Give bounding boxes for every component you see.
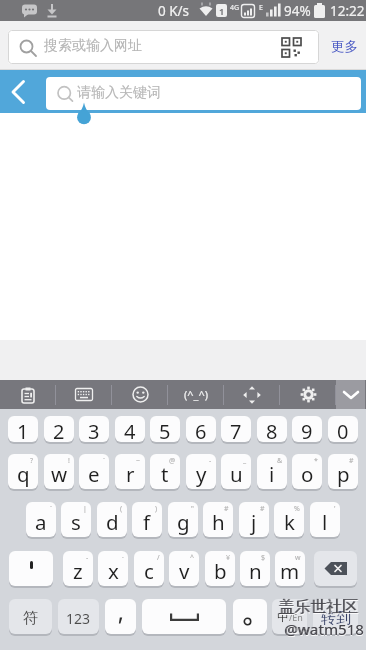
staticText: ` [103,456,105,466]
staticText: /En [289,611,303,623]
staticText: h [212,508,225,536]
button[interactable]: 符 [9,599,52,634]
button[interactable]: h [203,502,233,537]
staticText: 12:22 [330,2,365,20]
staticText: e [88,460,100,488]
staticText: s [71,508,81,536]
staticText: ( [120,504,123,514]
staticText: # [260,504,265,514]
button[interactable]: k [274,502,304,537]
staticText: ` [50,504,52,514]
staticText: 2 [53,418,65,442]
staticText: @watm518 [285,620,364,640]
staticText: / [157,553,160,563]
staticText: y [196,460,207,488]
button[interactable]: 搜索或输入网址 [8,30,319,64]
button[interactable]: q [8,454,38,489]
button[interactable] [0,380,56,409]
button[interactable]: (^_^) [168,380,224,409]
staticText: # [224,504,229,514]
button[interactable]: g [168,502,198,537]
staticText: 1 [219,5,225,17]
button[interactable]: 请输入关键词 [46,77,361,110]
button[interactable]: 中 [272,599,307,634]
button[interactable] [280,380,336,409]
staticText: 转到 [321,609,351,628]
button[interactable]: 更多 [322,29,366,63]
staticText: n [249,557,262,585]
staticText: t [161,460,169,488]
button[interactable]: 5 [150,416,180,442]
button[interactable]: 7 [221,416,251,442]
button[interactable]: e [79,454,109,489]
button[interactable]: z [63,551,93,586]
staticText: j [251,508,257,536]
staticText: k [284,508,295,536]
button[interactable]: r [115,454,145,489]
button[interactable]: 转到 [313,599,358,634]
staticText: r [126,460,135,488]
button[interactable] [224,380,280,409]
button[interactable] [56,380,112,409]
staticText: & [277,456,283,466]
button[interactable] [105,599,136,634]
button[interactable]: u [221,454,251,489]
button[interactable]: l [310,502,340,537]
button[interactable]: s [61,502,91,537]
staticText: w [295,553,301,563]
button[interactable]: v [169,551,199,586]
button[interactable]: i [257,454,287,489]
button[interactable]: x [98,551,128,586]
button[interactable]: 4 [115,416,145,442]
staticText: 盖乐世社区 [279,598,359,618]
staticText: 9 [301,418,313,442]
button[interactable]: a [26,502,56,537]
button[interactable] [142,599,226,634]
staticText: ¥ [226,553,231,563]
staticText: $ [261,553,266,563]
button[interactable]: o [292,454,322,489]
button[interactable] [314,551,357,586]
staticText: ~ [136,456,141,466]
staticText: q [17,460,30,488]
staticText: c [144,557,154,585]
staticText: 4G [230,3,240,13]
button[interactable]: p [328,454,358,489]
button[interactable]: 8 [257,416,287,442]
button[interactable]: d [97,502,127,537]
staticText: # [349,456,354,466]
button[interactable]: 123 [58,599,99,634]
button[interactable]: w [44,454,74,489]
button[interactable] [112,380,168,409]
button[interactable]: f [132,502,162,537]
button[interactable]: 3 [79,416,109,442]
button[interactable]: 0 [328,416,358,442]
button[interactable] [9,551,53,586]
button[interactable] [233,599,267,634]
button[interactable] [336,380,365,409]
staticText: * [314,456,318,466]
button[interactable]: j [239,502,269,537]
button[interactable]: m [275,551,305,586]
staticText: 8 [266,418,278,442]
button[interactable]: 9 [292,416,322,442]
button[interactable]: b [205,551,235,586]
staticText: 5 [159,418,171,442]
staticText: ^ [190,553,195,563]
button[interactable]: t [150,454,180,489]
button[interactable]: 6 [186,416,216,442]
staticText: 请输入关键词 [77,84,161,102]
button[interactable]: n [240,551,270,586]
staticText: v [179,557,190,585]
button[interactable]: c [134,551,164,586]
button[interactable]: 1 [8,416,38,442]
staticText: E [259,3,263,13]
button[interactable] [0,70,40,113]
staticText: ? [30,456,34,466]
button[interactable]: 2 [44,416,74,442]
staticText: x [108,557,119,585]
staticText: 盖乐世社区 [278,597,358,617]
staticText: 123 [66,609,91,628]
staticText: 4 [124,418,136,442]
button[interactable]: y [186,454,216,489]
